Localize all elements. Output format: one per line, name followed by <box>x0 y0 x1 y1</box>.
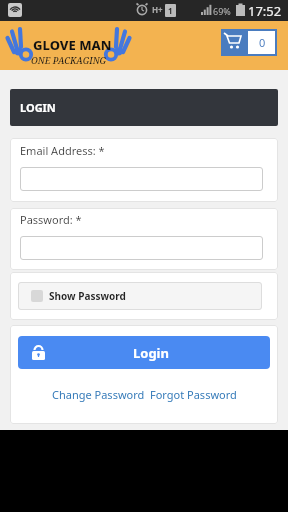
button[interactable]: 0 <box>221 29 277 56</box>
button[interactable] <box>20 167 263 191</box>
button[interactable]: Change Password <box>52 387 145 402</box>
staticText: 0 <box>259 35 266 50</box>
staticText: LOGIN <box>20 100 56 115</box>
staticText: H+ <box>152 4 163 15</box>
staticText: 1 <box>168 5 173 16</box>
button[interactable]: GLOVE MAN <box>8 26 130 67</box>
staticText: Email Address: * <box>20 143 105 158</box>
staticText: Password: * <box>20 212 82 227</box>
staticText: Show Password <box>49 289 126 303</box>
button[interactable]: Show Password <box>18 282 262 310</box>
staticText: ONE PACKAGING <box>31 54 107 66</box>
staticText: 17:52 <box>248 2 282 20</box>
staticText: Login <box>133 344 169 362</box>
staticText: GLOVE MAN <box>33 36 112 54</box>
staticText: 69% <box>213 5 231 17</box>
button[interactable]: Forgot Password <box>150 387 237 402</box>
button[interactable] <box>20 236 263 260</box>
button[interactable]: Login <box>18 336 270 369</box>
